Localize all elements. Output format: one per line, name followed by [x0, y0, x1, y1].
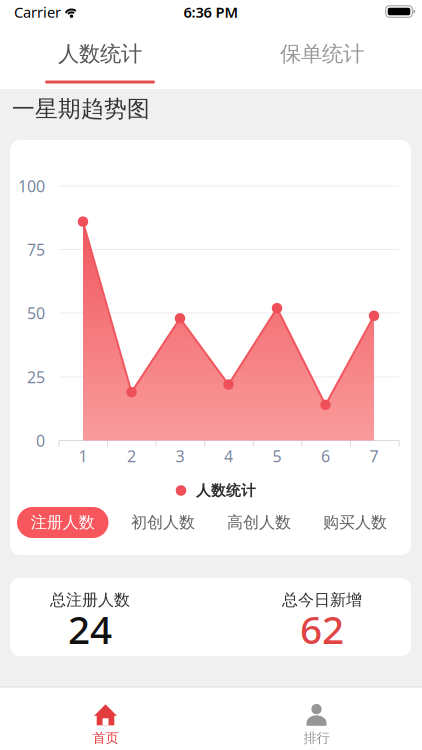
staticText: 总今日新增 [282, 590, 362, 610]
staticText: 5 [272, 445, 281, 467]
staticText: 24 [68, 603, 112, 655]
button[interactable]: 购买人数 [315, 507, 395, 538]
staticText: 注册人数 [31, 513, 95, 532]
staticText: 25 [27, 366, 45, 388]
staticText: 100 [18, 175, 45, 197]
staticText: 人数统计 [196, 481, 256, 499]
staticText: 6:36 PM [183, 2, 238, 22]
staticText: 排行 [303, 730, 329, 746]
staticText: 初创人数 [131, 513, 195, 532]
staticText: 总注册人数 [50, 590, 130, 610]
staticText: 人数统计 [58, 41, 142, 67]
staticText: 4 [224, 445, 233, 467]
button[interactable]: 首页 [15, 700, 195, 750]
button[interactable]: 排行 [226, 700, 406, 750]
staticText: 2 [127, 445, 136, 467]
button[interactable]: 高创人数 [219, 507, 299, 538]
staticText: 50 [27, 302, 45, 324]
button[interactable]: 保单统计 [227, 25, 417, 83]
staticText: 高创人数 [227, 513, 291, 532]
staticText: 6 [321, 445, 330, 467]
staticText: 购买人数 [323, 513, 387, 532]
staticText: 7 [369, 445, 378, 467]
staticText: 3 [175, 445, 184, 467]
staticText: 1 [78, 445, 87, 467]
staticText: 保单统计 [280, 41, 364, 67]
staticText: 62 [300, 603, 344, 655]
staticText: 首页 [92, 730, 118, 746]
button[interactable]: 人数统计 [5, 25, 195, 83]
staticText: 0 [36, 430, 45, 451]
staticText: Carrier [14, 2, 61, 22]
button[interactable]: 初创人数 [123, 507, 203, 538]
button[interactable]: 注册人数 [17, 507, 108, 538]
staticText: 75 [27, 239, 45, 260]
staticText: 一星期趋势图 [12, 95, 150, 123]
